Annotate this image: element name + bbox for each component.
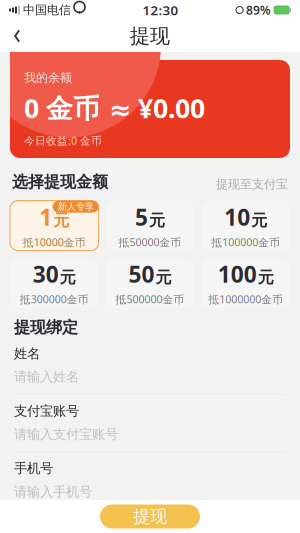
staticText: 提现 [130, 24, 170, 48]
staticText: 89% [246, 2, 271, 18]
staticText: 元 [155, 268, 171, 287]
staticText: 请输入手机号 [14, 484, 92, 500]
staticText: 5 [135, 202, 148, 232]
staticText: 请输入姓名 [14, 369, 79, 385]
staticText: 50 [128, 259, 154, 289]
staticText: 30 [33, 259, 59, 289]
staticText: 姓名 [14, 345, 40, 362]
staticText: 元 [258, 268, 274, 287]
staticText: 新人专享 [58, 201, 94, 212]
staticText: 0 金币 ≈ ¥0.00 [24, 90, 205, 125]
staticText: 提现至支付宝 [216, 177, 288, 192]
staticText: 抵100000金币 [211, 235, 280, 249]
staticText: 中国电信 [23, 3, 71, 17]
staticText: 元 [53, 211, 69, 230]
button[interactable]: Back [0, 20, 34, 52]
staticText: 请输入支付宝账号 [14, 426, 118, 442]
button[interactable]: 提现 [100, 504, 200, 528]
staticText: 元 [60, 268, 76, 287]
staticText: 今日收益:0 金币 [24, 133, 102, 148]
button[interactable]: 请输入支付宝账号 [14, 419, 286, 451]
staticText: 抵1000000金币 [208, 292, 283, 306]
staticText: 抵300000金币 [20, 292, 89, 306]
staticText: 抵50000金币 [118, 235, 181, 249]
staticText: 支付宝账号 [14, 403, 79, 419]
staticText: 1 [39, 202, 52, 232]
staticText: 提现 [133, 506, 167, 527]
button[interactable]: 30 [10, 258, 99, 308]
staticText: 100 [218, 259, 257, 289]
staticText: 元 [251, 211, 267, 230]
staticText: 10 [224, 202, 250, 232]
button[interactable]: 10 [201, 201, 290, 251]
staticText: 提现绑定 [14, 318, 78, 337]
staticText: 抵500000金币 [115, 292, 184, 306]
button[interactable]: 50 [106, 258, 194, 308]
staticText: 手机号 [14, 460, 53, 477]
button[interactable]: 5 [106, 201, 194, 251]
staticText: 12:30 [143, 1, 179, 19]
button[interactable]: 100 [201, 258, 290, 308]
staticText: 抵10000金币 [23, 235, 86, 249]
button[interactable]: 请输入手机号 [14, 477, 286, 509]
staticText: 选择提现金额 [12, 172, 108, 192]
staticText: 元 [149, 211, 165, 230]
button[interactable]: 1 [10, 201, 99, 251]
staticText: 我的余额 [24, 70, 72, 85]
button[interactable]: 请输入姓名 [14, 362, 286, 394]
